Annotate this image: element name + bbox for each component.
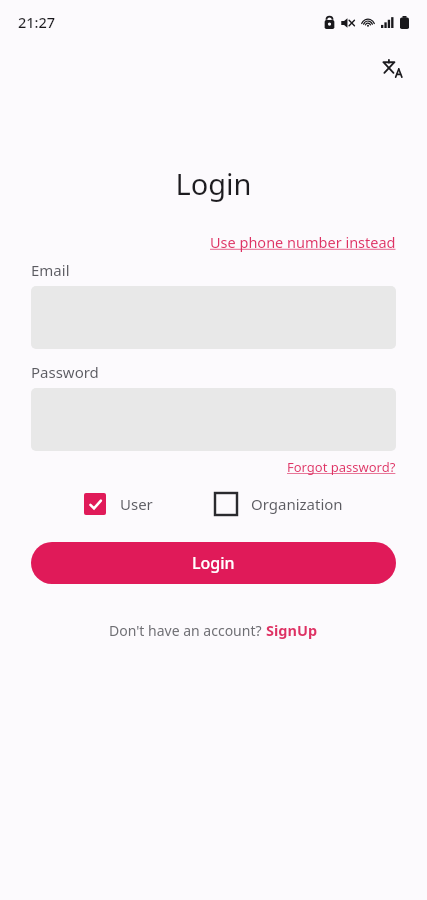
staticText: Don't have an account? (109, 621, 266, 640)
button[interactable]: Login (31, 542, 396, 584)
button[interactable]: Organization (215, 489, 343, 519)
button[interactable]: Use phone number instead (210, 232, 396, 252)
staticText: Login (0, 164, 427, 203)
button[interactable]: Forgot password? (287, 458, 396, 476)
button[interactable]: SignUp (266, 620, 318, 640)
button[interactable]: User (84, 489, 153, 519)
staticText: Login (192, 552, 235, 574)
staticText: 21:27 (18, 12, 56, 32)
staticText: Organization (251, 494, 343, 514)
staticText: User (120, 494, 153, 514)
staticText: Email (31, 260, 427, 280)
button[interactable]: Translate language (373, 48, 413, 88)
staticText: Password (31, 362, 427, 382)
